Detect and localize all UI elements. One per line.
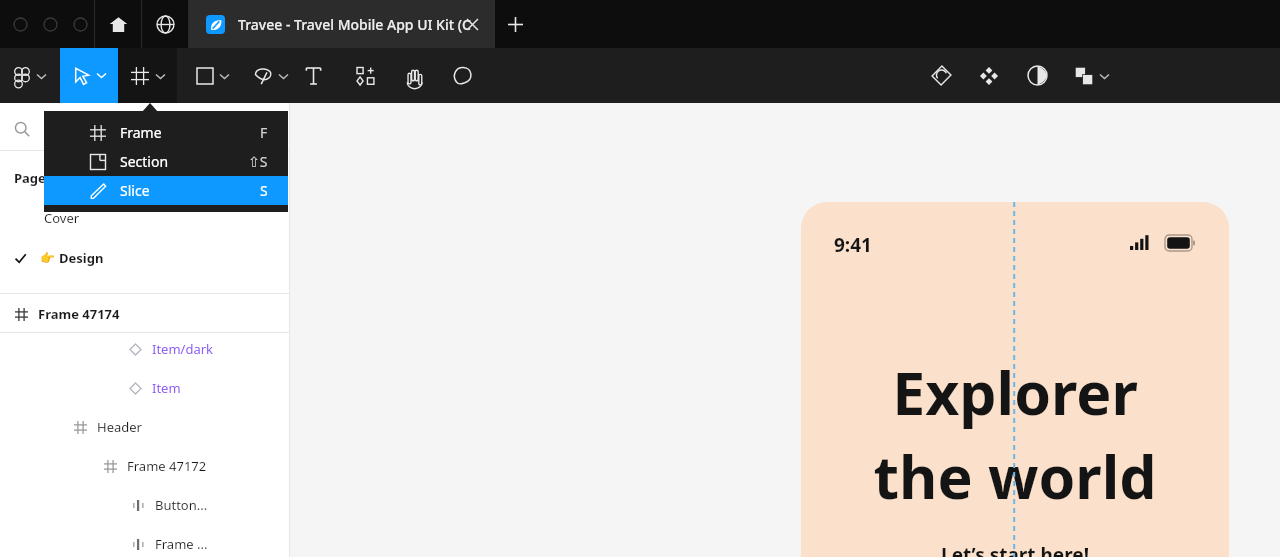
staticText: Section xyxy=(120,152,169,171)
button[interactable]: Actions xyxy=(922,48,960,103)
staticText: Cover xyxy=(44,209,80,227)
button[interactable]: Comment xyxy=(442,48,482,103)
button[interactable]: Item/dark xyxy=(0,335,290,363)
button[interactable]: Item xyxy=(0,374,290,402)
button[interactable]: Components xyxy=(345,48,387,103)
button[interactable]: Frame xyxy=(44,118,288,147)
staticText: 9:41 xyxy=(834,232,872,258)
button[interactable]: New tab xyxy=(498,0,532,48)
button[interactable] xyxy=(0,48,60,103)
button[interactable]: Section xyxy=(44,147,288,176)
staticText: Let’s start here! xyxy=(941,542,1089,557)
staticText: 👉 xyxy=(40,251,55,265)
staticText: Frame 47172 xyxy=(127,457,207,475)
staticText: Page xyxy=(14,169,46,187)
button[interactable]: Frame 47174 xyxy=(0,299,290,329)
staticText: Frame ... xyxy=(155,535,208,553)
staticText: Item xyxy=(152,379,181,397)
button[interactable]: Button... xyxy=(0,491,290,519)
button[interactable]: Slice xyxy=(44,176,288,205)
staticText: Item/dark xyxy=(152,340,214,358)
button[interactable]: Explore xyxy=(142,0,188,48)
button[interactable]: Text tool xyxy=(296,48,330,103)
button[interactable]: Hand tool xyxy=(394,48,434,103)
button[interactable]: Header xyxy=(0,413,290,441)
button[interactable]: Close tab xyxy=(455,0,489,48)
button[interactable]: Share xyxy=(1066,48,1118,103)
button[interactable]: Frame ... xyxy=(0,530,290,557)
staticText: Explorer xyxy=(892,352,1138,432)
button[interactable]: Shape tool xyxy=(185,48,241,103)
button[interactable]: Travee - Travel Mobile App UI Kit (C xyxy=(189,0,495,48)
staticText: Slice xyxy=(120,181,150,200)
button[interactable]: Home xyxy=(95,0,141,48)
staticText: Design xyxy=(59,249,104,267)
staticText: Header xyxy=(97,418,142,436)
button[interactable]: Plugins xyxy=(970,48,1008,103)
button[interactable]: Move tool xyxy=(60,48,118,103)
staticText: the world xyxy=(873,436,1157,516)
button[interactable]: 👉 xyxy=(0,243,290,273)
button[interactable]: Frame 47172 xyxy=(0,452,290,480)
staticText: Frame xyxy=(120,123,162,142)
staticText: Frame 47174 xyxy=(38,305,120,323)
staticText: Button... xyxy=(155,496,208,514)
button[interactable]: Pen tool xyxy=(243,48,299,103)
staticText: S xyxy=(260,181,268,200)
staticText: F xyxy=(260,123,268,142)
staticText: Travee - Travel Mobile App UI Kit (C xyxy=(238,15,472,34)
staticText: ⇧S xyxy=(248,152,268,171)
button[interactable]: Theme xyxy=(1018,48,1056,103)
button[interactable]: Frame tool xyxy=(118,48,177,103)
